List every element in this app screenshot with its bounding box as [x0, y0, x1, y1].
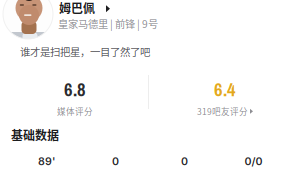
staticText: 6.4 [214, 77, 236, 102]
staticText: 89' [38, 155, 55, 168]
button[interactable]: 姆巴佩 [59, 0, 110, 16]
staticText: 皇家马德里 | 前锋 | 9号 [58, 16, 158, 31]
button[interactable]: 姆巴佩 头像 [3, 0, 53, 39]
staticText: 319吧友评分 [197, 105, 248, 117]
staticText: 0 [181, 155, 188, 168]
staticText: 姆巴佩 [59, 0, 95, 16]
staticText: 媒体评分 [57, 105, 93, 117]
staticText: 6.8 [64, 77, 86, 102]
staticText: 谁才是扫把星，一目了然了吧 [20, 44, 150, 59]
staticText: 基础数据 [11, 126, 59, 143]
button[interactable]: 6.4 [150, 77, 300, 117]
staticText: 0 [112, 155, 119, 168]
staticText: 0/0 [244, 155, 262, 168]
